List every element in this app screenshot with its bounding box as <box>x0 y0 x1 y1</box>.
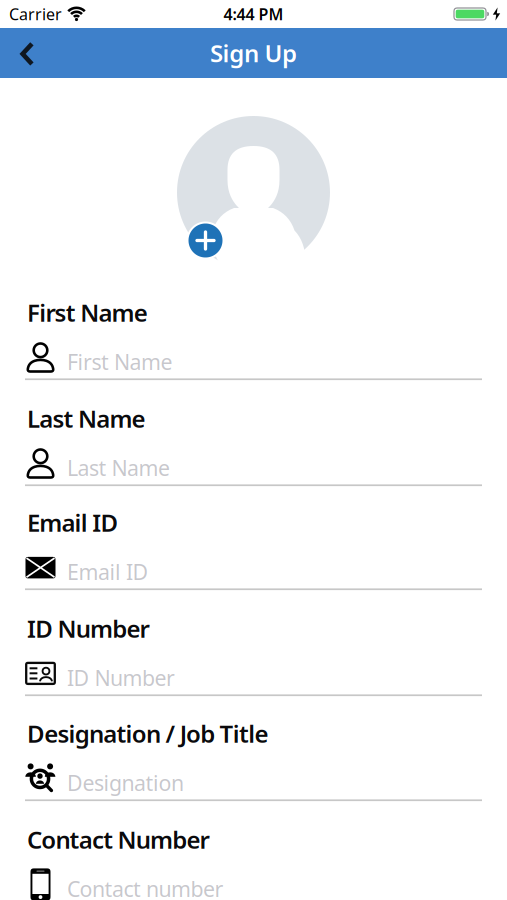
button[interactable]: Designation <box>25 749 482 801</box>
staticText: Last Name <box>67 454 170 482</box>
staticText: Contact Number <box>27 823 210 855</box>
staticText: First Name <box>67 348 172 376</box>
staticText: Carrier <box>9 3 62 25</box>
staticText: 4:44 PM <box>223 3 283 25</box>
button[interactable]: ID Number <box>25 644 482 696</box>
button[interactable]: Email ID <box>25 538 482 590</box>
staticText: First Name <box>27 296 148 328</box>
button[interactable]: Contact number <box>25 855 482 900</box>
staticText: ID Number <box>67 664 175 692</box>
staticText: Email ID <box>27 506 118 538</box>
staticText: Email ID <box>67 558 148 586</box>
button[interactable]: Add photo <box>186 221 225 260</box>
staticText: Designation <box>67 769 184 797</box>
button[interactable]: Back <box>0 40 48 65</box>
staticText: ID Number <box>27 612 150 644</box>
staticText: Last Name <box>27 402 146 434</box>
staticText: Sign Up <box>210 37 297 69</box>
button[interactable]: First Name <box>25 328 482 380</box>
staticText: Contact number <box>67 875 223 900</box>
staticText: Designation / Job Title <box>27 717 268 749</box>
button[interactable]: Last Name <box>25 434 482 486</box>
